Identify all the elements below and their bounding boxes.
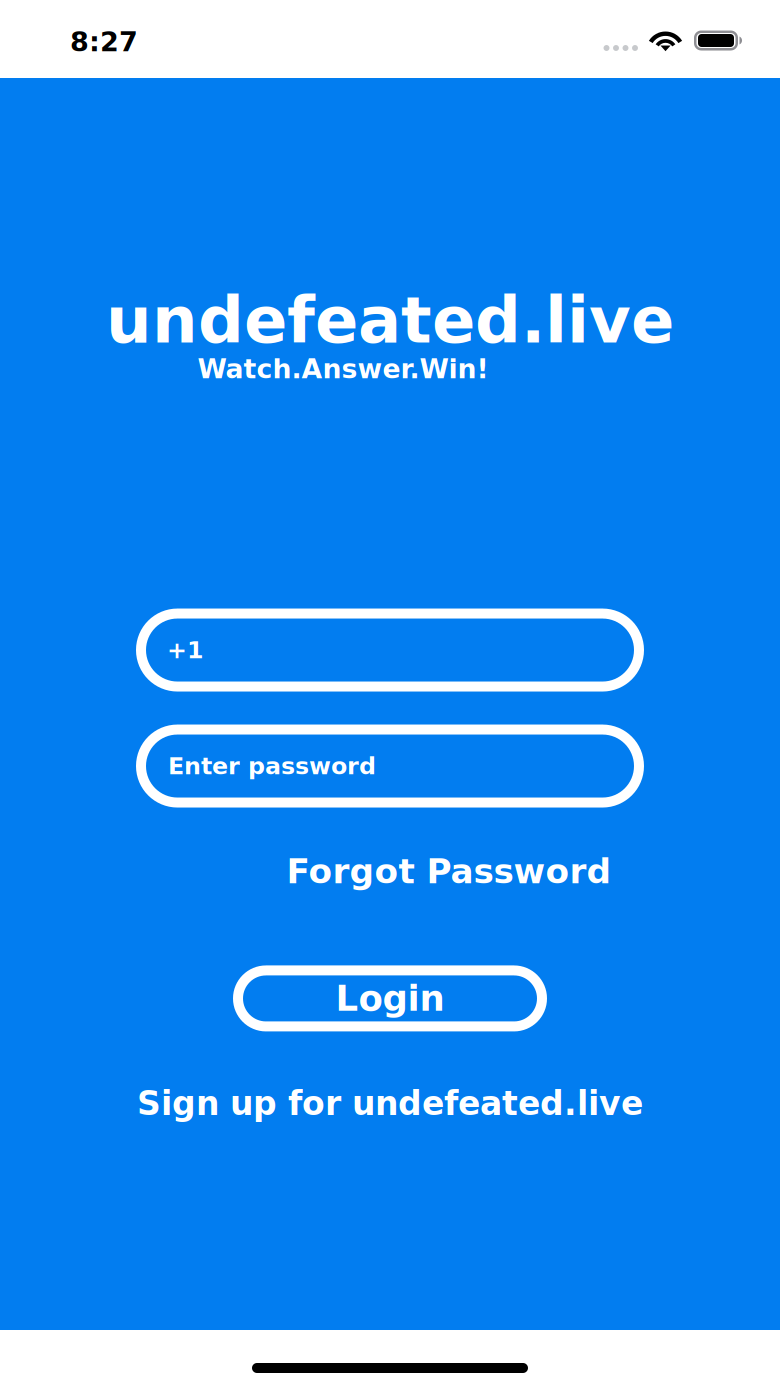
staticText: Enter password (168, 752, 376, 780)
staticText: 8:27 (70, 26, 138, 58)
button[interactable]: Forgot Password (286, 851, 611, 891)
staticText: Watch.Answer.Win! (197, 353, 488, 384)
staticText: Forgot Password (286, 851, 611, 891)
staticText: Login (335, 978, 444, 1019)
button[interactable]: Enter password (136, 724, 644, 807)
button[interactable]: +1 (136, 608, 644, 691)
button[interactable]: Sign up for undefeated.live (137, 1084, 643, 1123)
staticText: Sign up for undefeated.live (137, 1084, 643, 1123)
button[interactable]: Login (233, 965, 547, 1031)
staticText: +1 (167, 636, 204, 664)
staticText: undefeated.live (106, 283, 674, 357)
